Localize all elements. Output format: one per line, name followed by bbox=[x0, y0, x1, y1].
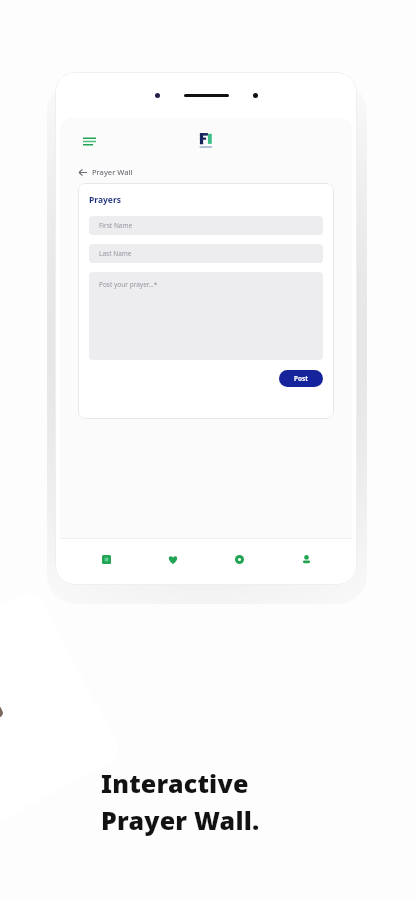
staticText: Prayer Wall. bbox=[101, 803, 260, 837]
button[interactable]: App logo bbox=[193, 128, 219, 154]
button[interactable]: First Name bbox=[89, 216, 323, 235]
button[interactable]: Last Name bbox=[89, 244, 323, 263]
staticText: Last Name bbox=[99, 249, 132, 258]
button[interactable]: Home bbox=[86, 539, 126, 579]
button[interactable]: Post bbox=[279, 370, 323, 387]
staticText: Post your prayer...* bbox=[99, 280, 158, 289]
button[interactable]: Discover bbox=[219, 539, 259, 579]
staticText: Post bbox=[294, 374, 308, 383]
button[interactable]: Favorites bbox=[153, 539, 193, 579]
staticText: First Name bbox=[99, 221, 133, 230]
button[interactable]: Post your prayer...* bbox=[89, 272, 323, 360]
staticText: Prayers bbox=[89, 194, 121, 206]
staticText: Prayer Wall bbox=[92, 167, 133, 177]
staticText: Interactive bbox=[101, 766, 249, 800]
button[interactable]: Profile bbox=[286, 539, 326, 579]
button[interactable]: Open navigation menu bbox=[78, 130, 100, 152]
button[interactable]: Prayer Wall bbox=[78, 167, 352, 177]
